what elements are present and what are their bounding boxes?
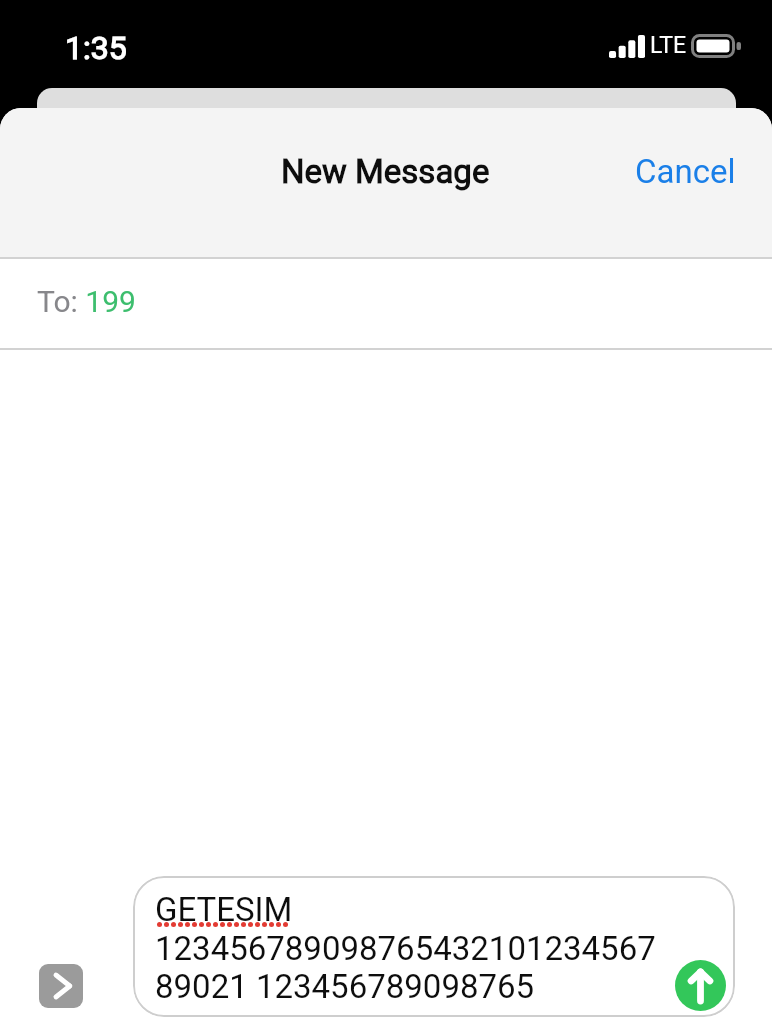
other: Cellular signal [609,35,645,58]
button[interactable]: Show apps [39,964,83,1008]
other: Battery full [691,34,741,58]
button[interactable]: To: 199 [0,259,772,348]
button[interactable]: Cancel [611,139,760,204]
staticText: 89021 123456789098765 [155,967,535,1006]
staticText: LTE [650,32,687,59]
staticText: GETESIM [155,890,293,929]
staticText: 123456789098765432101234567 [155,929,656,968]
staticText: New Message [281,152,490,191]
button[interactable]: Send [675,960,726,1011]
staticText: To: 199 [37,284,136,319]
staticText: Cancel [635,152,736,191]
button[interactable]: GETESIM [133,876,735,1017]
staticText: 1:35 [65,29,127,67]
